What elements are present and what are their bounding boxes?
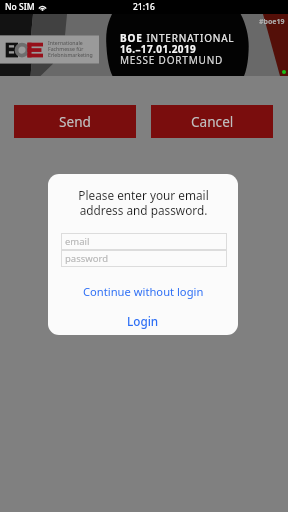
button[interactable]: Continue without login: [48, 279, 238, 303]
button[interactable]: Cancel: [151, 105, 273, 138]
staticText: Login: [127, 313, 159, 329]
staticText: BOE: [120, 31, 143, 45]
staticText: email: [65, 235, 90, 248]
staticText: Cancel: [191, 112, 234, 131]
staticText: Please enter your email address and pass…: [78, 187, 209, 219]
staticText: MESSE DORTMUND: [120, 53, 224, 67]
staticText: password: [65, 252, 109, 265]
button[interactable]: Send: [14, 105, 136, 138]
staticText: Send: [59, 112, 91, 131]
staticText: Internationale Fachmesse für Erlebnismar…: [48, 39, 93, 58]
staticText: 21:16: [133, 1, 155, 13]
button[interactable]: Login: [48, 309, 238, 333]
staticText: Continue without login: [83, 284, 204, 299]
staticText: INTERNATIONAL: [143, 31, 235, 45]
staticText: 16.–17.01.2019: [120, 42, 197, 56]
staticText: #boe19: [259, 17, 285, 27]
staticText: No SIM: [5, 1, 35, 13]
